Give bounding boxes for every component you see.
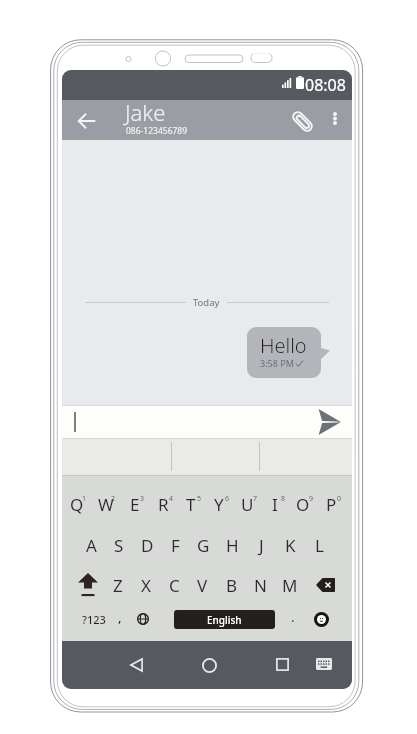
staticText: F (171, 534, 180, 557)
staticText: 6 (225, 494, 230, 504)
staticText: 4 (169, 494, 174, 504)
button[interactable]: R (149, 482, 177, 526)
button[interactable]: . (281, 600, 305, 638)
staticText: A (86, 534, 97, 557)
staticText: K (285, 534, 296, 557)
staticText: English (207, 613, 242, 627)
button[interactable]: Recent apps (260, 640, 304, 688)
staticText: , (118, 608, 122, 626)
staticText: M (282, 574, 298, 597)
staticText: P (326, 493, 337, 516)
staticText: L (315, 534, 324, 557)
staticText: R (158, 493, 169, 516)
button[interactable]: Back (114, 641, 158, 689)
button[interactable]: W (91, 482, 120, 526)
button[interactable]: V (188, 565, 217, 605)
button[interactable]: T (177, 482, 205, 526)
staticText: 5 (197, 494, 202, 504)
staticText: 9 (309, 494, 314, 504)
button[interactable]: P (317, 482, 345, 526)
staticText: 3 (140, 494, 145, 504)
button[interactable]: More options (317, 101, 352, 136)
staticText: Z (113, 574, 123, 597)
staticText: E (130, 493, 140, 516)
staticText: X (141, 574, 151, 597)
button[interactable]: U (233, 482, 261, 526)
button[interactable]: D (133, 524, 161, 566)
button[interactable]: Change language (130, 600, 155, 638)
staticText: 086-123456789 (126, 125, 188, 135)
button[interactable]: Emoji (307, 600, 335, 638)
button[interactable]: A (77, 524, 105, 566)
staticText: Y (214, 493, 224, 516)
button[interactable]: Hello (247, 327, 321, 378)
button[interactable]: N (246, 565, 275, 605)
button[interactable]: X (132, 565, 160, 605)
button[interactable]: G (189, 524, 218, 566)
button[interactable]: Z (104, 565, 132, 605)
staticText: H (226, 534, 239, 557)
staticText: D (141, 534, 154, 557)
staticText: 2 (111, 494, 116, 504)
staticText: G (197, 534, 210, 557)
staticText: U (241, 493, 254, 516)
button[interactable]: C (160, 565, 188, 605)
staticText: T (186, 493, 196, 516)
button[interactable] (171, 440, 259, 476)
button[interactable] (62, 440, 171, 476)
button[interactable]: J (247, 524, 276, 566)
staticText: . (291, 608, 295, 626)
button[interactable]: O (289, 482, 317, 526)
button[interactable]: Home (187, 641, 231, 689)
staticText: W (98, 493, 114, 516)
staticText: S (114, 534, 124, 557)
button[interactable]: Keyboard (304, 640, 344, 688)
staticText: I (272, 493, 278, 516)
staticText: Today (193, 296, 220, 309)
button[interactable]: L (305, 524, 334, 566)
staticText: ?123 (82, 612, 106, 627)
button[interactable]: Attach file (282, 101, 322, 141)
button[interactable]: Send (306, 405, 352, 439)
button[interactable]: I (261, 482, 289, 526)
staticText: C (169, 574, 180, 597)
button[interactable]: Shift (66, 565, 110, 605)
staticText: Q (70, 493, 84, 516)
button[interactable]: K (276, 524, 305, 566)
button[interactable]: Q (62, 482, 91, 526)
staticText: 1 (82, 494, 87, 504)
button[interactable]: S (105, 524, 133, 566)
button[interactable]: Backspace (307, 565, 344, 605)
button[interactable]: ?123 (74, 600, 114, 638)
button[interactable]: E (120, 482, 149, 526)
staticText: N (254, 574, 267, 597)
staticText: 0 (337, 494, 342, 504)
button[interactable]: English (174, 610, 275, 629)
staticText: Hello (260, 332, 307, 359)
staticText: 7 (253, 494, 258, 504)
button[interactable]: M (275, 565, 304, 605)
staticText: 3:58 PM (260, 357, 294, 369)
button[interactable] (259, 440, 352, 476)
button[interactable]: H (218, 524, 247, 566)
button[interactable]: Y (205, 482, 233, 526)
button[interactable]: B (217, 565, 246, 605)
staticText: Jake (125, 97, 166, 127)
button[interactable]: Back (66, 101, 106, 141)
staticText: O (296, 493, 310, 516)
staticText: 8 (281, 494, 286, 504)
staticText: V (197, 574, 208, 597)
button[interactable]: , (107, 600, 132, 638)
button[interactable]: F (161, 524, 189, 566)
staticText: J (259, 534, 264, 557)
staticText: B (226, 574, 238, 597)
staticText: 08:08 (305, 74, 346, 96)
